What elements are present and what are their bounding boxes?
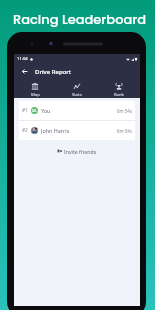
- staticText: 6m 54s: [117, 108, 132, 114]
- staticText: 6m 54s: [117, 128, 132, 134]
- staticText: Invite friends: [64, 148, 97, 155]
- button[interactable]: Rank: [98, 79, 140, 98]
- staticText: Stats: [72, 92, 82, 98]
- staticText: Drive Report: [35, 68, 72, 76]
- staticText: #2: [22, 127, 28, 134]
- button[interactable]: Back: [19, 66, 30, 77]
- button[interactable]: Invite friends: [54, 146, 100, 157]
- button[interactable]: #2: [19, 121, 135, 140]
- button[interactable]: #1: [19, 101, 135, 120]
- staticText: Racing Leaderboard: [13, 10, 147, 28]
- staticText: John Harris: [41, 127, 70, 134]
- staticText: ML: [32, 108, 38, 113]
- button[interactable]: Stats: [56, 79, 98, 98]
- button[interactable]: Map: [14, 79, 56, 98]
- staticText: 11:04: [17, 56, 28, 62]
- staticText: Rank: [114, 92, 124, 98]
- staticText: #1: [22, 107, 28, 114]
- staticText: You: [41, 107, 51, 114]
- staticText: Map: [31, 92, 40, 98]
